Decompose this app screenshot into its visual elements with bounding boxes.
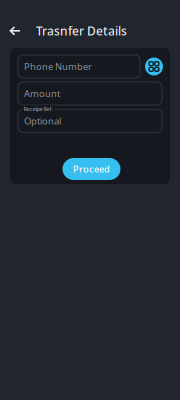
staticText: Amount	[24, 87, 60, 100]
staticText: Optional	[24, 115, 61, 127]
staticText: Phone Number	[24, 60, 92, 73]
staticText: Proceed	[73, 163, 110, 175]
staticText: Receipe Ref.	[23, 105, 52, 113]
staticText: Trasnfer Details	[36, 23, 127, 39]
button[interactable]: Scan QR code	[145, 57, 163, 75]
button[interactable]: Proceed	[62, 158, 120, 180]
button[interactable]: Back	[3, 19, 27, 43]
